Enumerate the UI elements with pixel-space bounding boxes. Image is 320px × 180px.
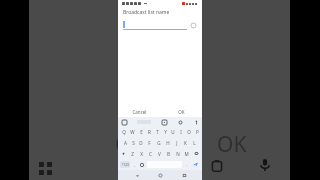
staticText: A [124, 140, 127, 146]
button[interactable]: Voice input [193, 119, 199, 125]
button[interactable]: D [137, 137, 145, 148]
staticText: Cancel [132, 109, 147, 115]
button[interactable]: Stickers [161, 119, 167, 125]
staticText: W [130, 129, 135, 135]
staticText: N [176, 151, 180, 157]
button[interactable]: R [145, 126, 153, 137]
staticText: , [134, 162, 136, 167]
button[interactable]: Settings [177, 119, 183, 125]
button[interactable]: N [173, 148, 182, 159]
staticText: Cance [115, 130, 175, 159]
staticText: R [148, 129, 151, 135]
staticText: H [166, 140, 170, 146]
staticText: X [140, 151, 143, 157]
button[interactable]: A [121, 137, 129, 148]
staticText: OK [217, 130, 247, 159]
staticText: P [196, 129, 199, 135]
button[interactable]: ?123 [120, 161, 130, 168]
staticText: Z [131, 151, 134, 157]
button[interactable]: H [163, 137, 172, 148]
button[interactable]: Q [119, 126, 128, 137]
staticText: T [156, 129, 159, 135]
staticText: U [171, 129, 175, 135]
button[interactable]: P [193, 126, 201, 137]
staticText: E [140, 129, 143, 135]
staticText: V [158, 151, 161, 157]
staticText: Y [164, 129, 167, 135]
staticText: G [157, 140, 161, 146]
staticText: C [149, 151, 152, 157]
button[interactable]: Emoji [190, 22, 197, 29]
button[interactable]: I [177, 126, 185, 137]
staticText: M [184, 151, 189, 157]
button[interactable]: Cancel [118, 107, 160, 117]
staticText: J [176, 140, 178, 146]
button[interactable]: Recents [179, 170, 189, 180]
button[interactable]: K [181, 137, 190, 148]
staticText: F [148, 140, 151, 146]
button[interactable]: Z [128, 148, 137, 159]
button[interactable]: Backspace [191, 148, 201, 159]
staticText: I [180, 129, 182, 135]
button[interactable]: , [131, 159, 138, 170]
button[interactable]: C [146, 148, 155, 159]
button[interactable]: V [155, 148, 164, 159]
button[interactable]: S [129, 137, 137, 148]
button[interactable]: G [154, 137, 163, 148]
button[interactable]: T [153, 126, 161, 137]
staticText: K [184, 140, 187, 146]
staticText: O [187, 129, 191, 135]
button[interactable]: Google Assistant [121, 119, 127, 125]
button[interactable]: F [145, 137, 154, 148]
staticText: . [186, 162, 188, 167]
button[interactable]: OK [160, 107, 202, 117]
button[interactable]: Shift [119, 148, 128, 159]
button[interactable]: Home [155, 170, 165, 180]
button[interactable]: L [190, 137, 199, 148]
staticText: B [167, 151, 170, 157]
staticText: Q [122, 129, 126, 135]
button[interactable]: Back [132, 170, 142, 180]
button[interactable] [123, 21, 187, 30]
staticText: ?123 [122, 163, 129, 167]
button[interactable]: J [172, 137, 181, 148]
button[interactable]: W [128, 126, 137, 137]
button[interactable]: Enter [190, 159, 201, 170]
staticText: S [132, 140, 135, 146]
button[interactable]: Emoji [138, 159, 146, 170]
staticText: Broadcast list name [123, 9, 170, 16]
staticText: D [139, 140, 143, 146]
button[interactable]: O [185, 126, 193, 137]
button[interactable]: Y [161, 126, 169, 137]
staticText: GIF [119, 162, 140, 180]
button[interactable]: X [137, 148, 146, 159]
staticText: L [193, 140, 196, 146]
button[interactable]: B [164, 148, 173, 159]
button[interactable]: U [169, 126, 177, 137]
staticText: OK [178, 109, 185, 115]
button[interactable]: M [182, 148, 191, 159]
button[interactable]: E [137, 126, 145, 137]
